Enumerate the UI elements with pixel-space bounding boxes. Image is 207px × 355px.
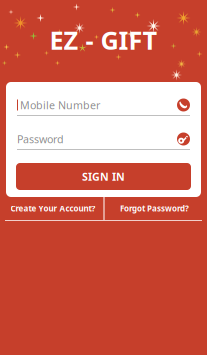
staticText: Forgot Password? — [120, 203, 189, 214]
staticText: Password — [17, 132, 64, 146]
button[interactable]: Create Your Account? — [2, 197, 103, 220]
button[interactable]: Forgot Password? — [104, 197, 204, 220]
staticText: Create Your Account? — [10, 203, 95, 214]
staticText: Mobile Number — [20, 98, 100, 112]
staticText: EZ - GIFT — [49, 23, 157, 57]
staticText: SIGN IN — [82, 169, 125, 184]
button[interactable]: SIGN IN — [16, 163, 191, 190]
